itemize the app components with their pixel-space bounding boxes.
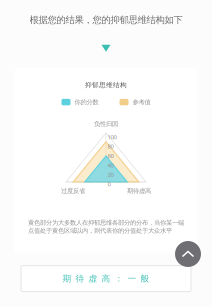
staticText: 抑郁思维结构 [85, 81, 127, 89]
staticText: 60 [107, 152, 113, 160]
staticText: 黄色部分为大多数人在抑郁思维各部分的分布，当你某一端点值处于黄色区域以内，则代表… [28, 219, 184, 235]
button[interactable]: Scroll to top [175, 241, 201, 267]
staticText: 0 [107, 180, 110, 188]
staticText: 80 [107, 142, 113, 150]
staticText: 过度反省 [61, 187, 85, 195]
staticText: 100 [107, 133, 116, 141]
staticText: 20 [107, 170, 113, 178]
staticText: 40 [107, 161, 113, 169]
staticText: 期待虚高：一般 [62, 273, 149, 284]
staticText: 你的分数 [74, 98, 98, 106]
staticText: 负性归因 [94, 120, 118, 128]
staticText: 期待虚高 [127, 187, 151, 195]
button[interactable]: 期待虚高：一般 [21, 266, 191, 292]
staticText: 参考值 [132, 98, 150, 106]
staticText: 根据您的结果，您的抑郁思维结构如下 [29, 14, 182, 26]
